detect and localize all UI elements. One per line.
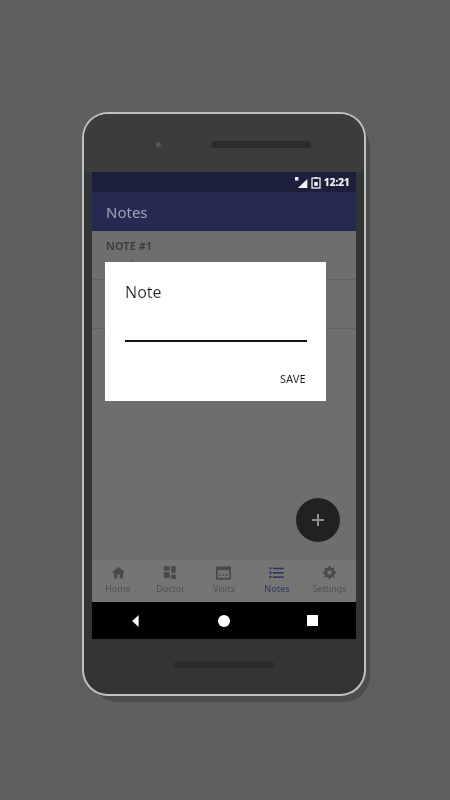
button[interactable]: Visits: [197, 560, 250, 602]
button[interactable]: Settings: [303, 560, 356, 602]
staticText: SAVE: [280, 371, 306, 386]
staticText: NOTE #2: [106, 287, 153, 302]
button[interactable]: Add note: [296, 498, 340, 542]
staticText: Notes: [264, 582, 290, 594]
button[interactable]: Back: [92, 602, 180, 639]
staticText: Settings: [312, 582, 347, 594]
button[interactable]: Recent apps: [268, 602, 356, 639]
button[interactable]: SAVE: [276, 368, 310, 389]
staticText: 12:21: [324, 175, 350, 189]
staticText: Home: [105, 582, 131, 594]
staticText: Doctor: [156, 582, 185, 594]
button[interactable]: NOTE #2: [92, 280, 356, 328]
staticText: Note: [125, 281, 162, 303]
button[interactable]: Doctor: [144, 560, 197, 602]
button[interactable]: Notes: [250, 560, 303, 602]
button[interactable]: Home: [92, 560, 144, 602]
button[interactable]: NOTE #1: [92, 231, 356, 279]
staticText: Notes: [106, 202, 148, 222]
staticText: NOTE #1: [106, 238, 153, 253]
button[interactable]: Home: [180, 602, 268, 639]
staticText: good: [106, 256, 133, 271]
staticText: Visits: [213, 582, 235, 594]
